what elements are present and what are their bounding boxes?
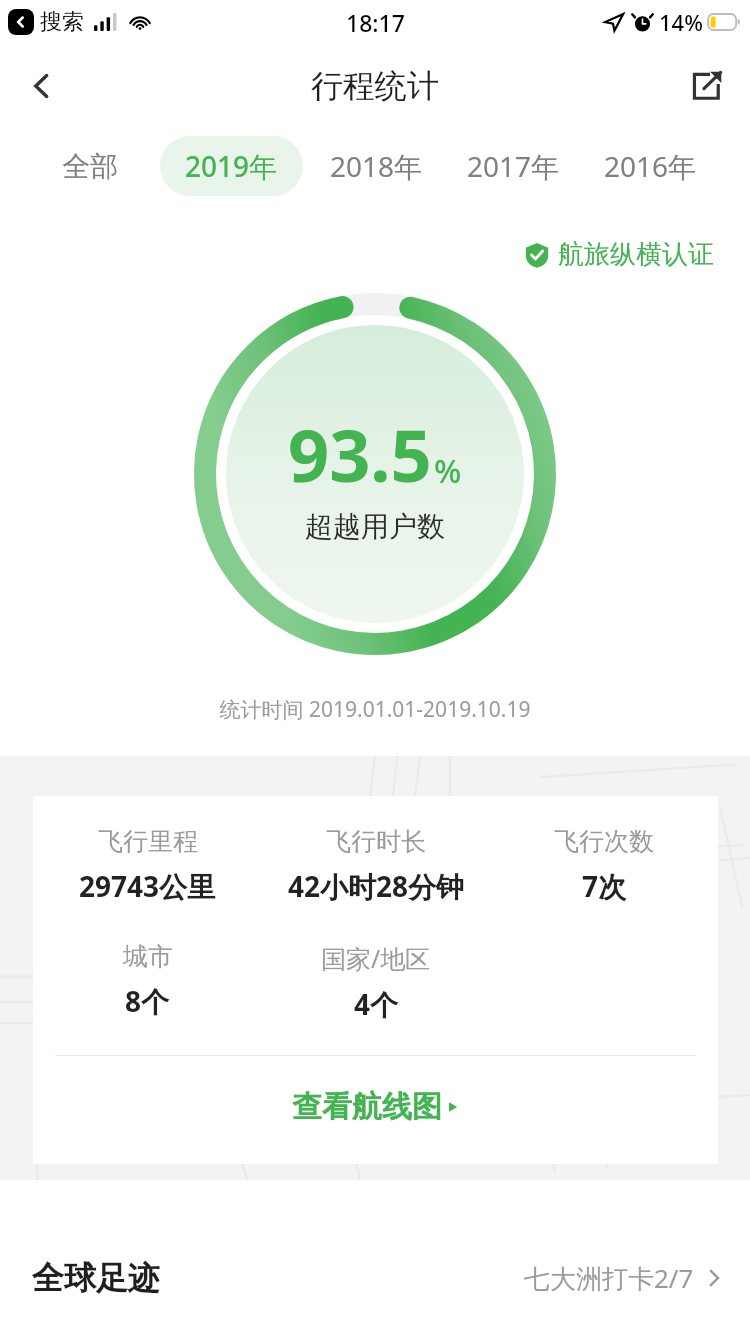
staticText: 七大洲打卡2/7 xyxy=(524,1260,694,1296)
staticText: 2019年 xyxy=(185,147,278,185)
staticText: 全球足迹 xyxy=(32,1258,160,1298)
button[interactable]: 2016年 xyxy=(604,147,697,185)
staticText: 搜索 xyxy=(40,8,84,36)
button[interactable]: Back xyxy=(14,58,70,114)
button[interactable]: 2019年 xyxy=(160,136,303,196)
staticText: 18:17 xyxy=(346,7,405,38)
button[interactable]: 全球足迹 xyxy=(0,1242,750,1314)
staticText: 国家/地区 xyxy=(321,941,431,975)
staticText: 8个 xyxy=(125,982,170,1020)
staticText: 7次 xyxy=(582,867,627,905)
staticText: 城市 xyxy=(123,941,173,972)
button[interactable]: 查看航线图 xyxy=(282,1084,470,1130)
staticText: 飞行里程 xyxy=(98,826,198,857)
staticText: 4个 xyxy=(354,985,399,1023)
staticText: 飞行时长 xyxy=(326,826,426,857)
staticText: 飞行次数 xyxy=(554,826,654,857)
staticText: 14% xyxy=(659,7,703,37)
staticText: 统计时间 2019.01.01-2019.10.19 xyxy=(0,695,750,724)
staticText: 航旅纵横认证 xyxy=(558,238,714,271)
staticText: % xyxy=(434,449,462,493)
staticText: 超越用户数 xyxy=(305,509,445,544)
button[interactable]: Share xyxy=(678,58,734,114)
button[interactable]: 全部 xyxy=(62,149,118,184)
staticText: 查看航线图 xyxy=(292,1088,442,1126)
staticText: 93.5 xyxy=(288,405,432,503)
staticText: 29743公里 xyxy=(79,867,216,905)
button[interactable]: 2018年 xyxy=(330,147,423,185)
staticText: 行程统计 xyxy=(311,66,439,106)
button[interactable]: 航旅纵横认证 xyxy=(524,238,714,271)
button[interactable]: 2017年 xyxy=(467,147,560,185)
staticText: 42小时28分钟 xyxy=(288,867,465,905)
